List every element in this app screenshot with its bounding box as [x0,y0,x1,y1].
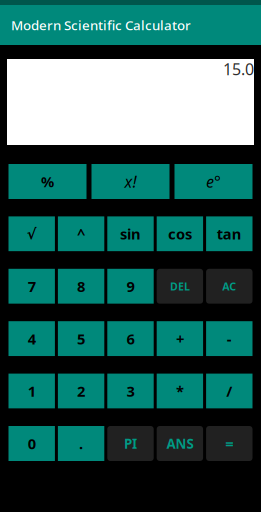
staticText: 3 [126,381,134,401]
button[interactable]: √ [8,216,55,251]
button[interactable]: 0 [8,426,55,461]
staticText: 2 [77,381,85,401]
staticText: e° [206,171,221,192]
staticText: 15.0 [223,58,254,80]
button[interactable]: + [157,321,203,356]
button[interactable]: tan [206,216,252,251]
button[interactable]: 8 [58,269,104,304]
staticText: 4 [28,329,36,349]
staticText: 1 [28,381,36,401]
button[interactable]: 2 [58,374,104,409]
staticText: √ [27,225,37,242]
staticText: 6 [126,329,134,349]
staticText: + [176,329,184,349]
staticText: 9 [126,276,134,296]
staticText: * [176,381,184,401]
staticText: AC [222,279,236,293]
button[interactable]: cos [157,216,203,251]
button[interactable]: PI [107,426,154,461]
button[interactable]: . [58,426,104,461]
staticText: cos [168,224,192,244]
staticText: Modern Scientific Calculator [11,16,191,34]
staticText: PI [124,434,137,453]
button[interactable]: sin [107,216,154,251]
staticText: ANS [166,434,193,453]
button[interactable]: AC [206,269,252,304]
staticText: sin [120,224,141,244]
staticText: . [79,433,83,453]
staticText: x! [124,171,136,192]
button[interactable]: = [206,426,252,461]
button[interactable]: 6 [107,321,154,356]
staticText: = [225,433,233,453]
staticText: 8 [77,276,85,296]
button[interactable]: % [8,164,86,199]
staticText: / [226,381,232,401]
staticText: tan [217,224,242,244]
button[interactable]: - [206,321,252,356]
staticText: DEL [170,279,190,293]
button[interactable]: DEL [157,269,203,304]
button[interactable]: 7 [8,269,55,304]
staticText: 5 [77,329,85,349]
button[interactable]: ANS [157,426,203,461]
button[interactable]: * [157,374,203,409]
staticText: ^ [77,224,85,244]
button[interactable]: e° [174,164,252,199]
button[interactable]: 3 [107,374,154,409]
button[interactable]: 4 [8,321,55,356]
staticText: 7 [28,276,36,296]
button[interactable]: 1 [8,374,55,409]
button[interactable]: 5 [58,321,104,356]
staticText: % [41,171,54,191]
button[interactable]: 9 [107,269,154,304]
button[interactable]: ^ [58,216,104,251]
button[interactable]: x! [91,164,169,199]
staticText: 0 [28,433,36,453]
button[interactable]: / [206,374,252,409]
staticText: - [227,329,232,349]
